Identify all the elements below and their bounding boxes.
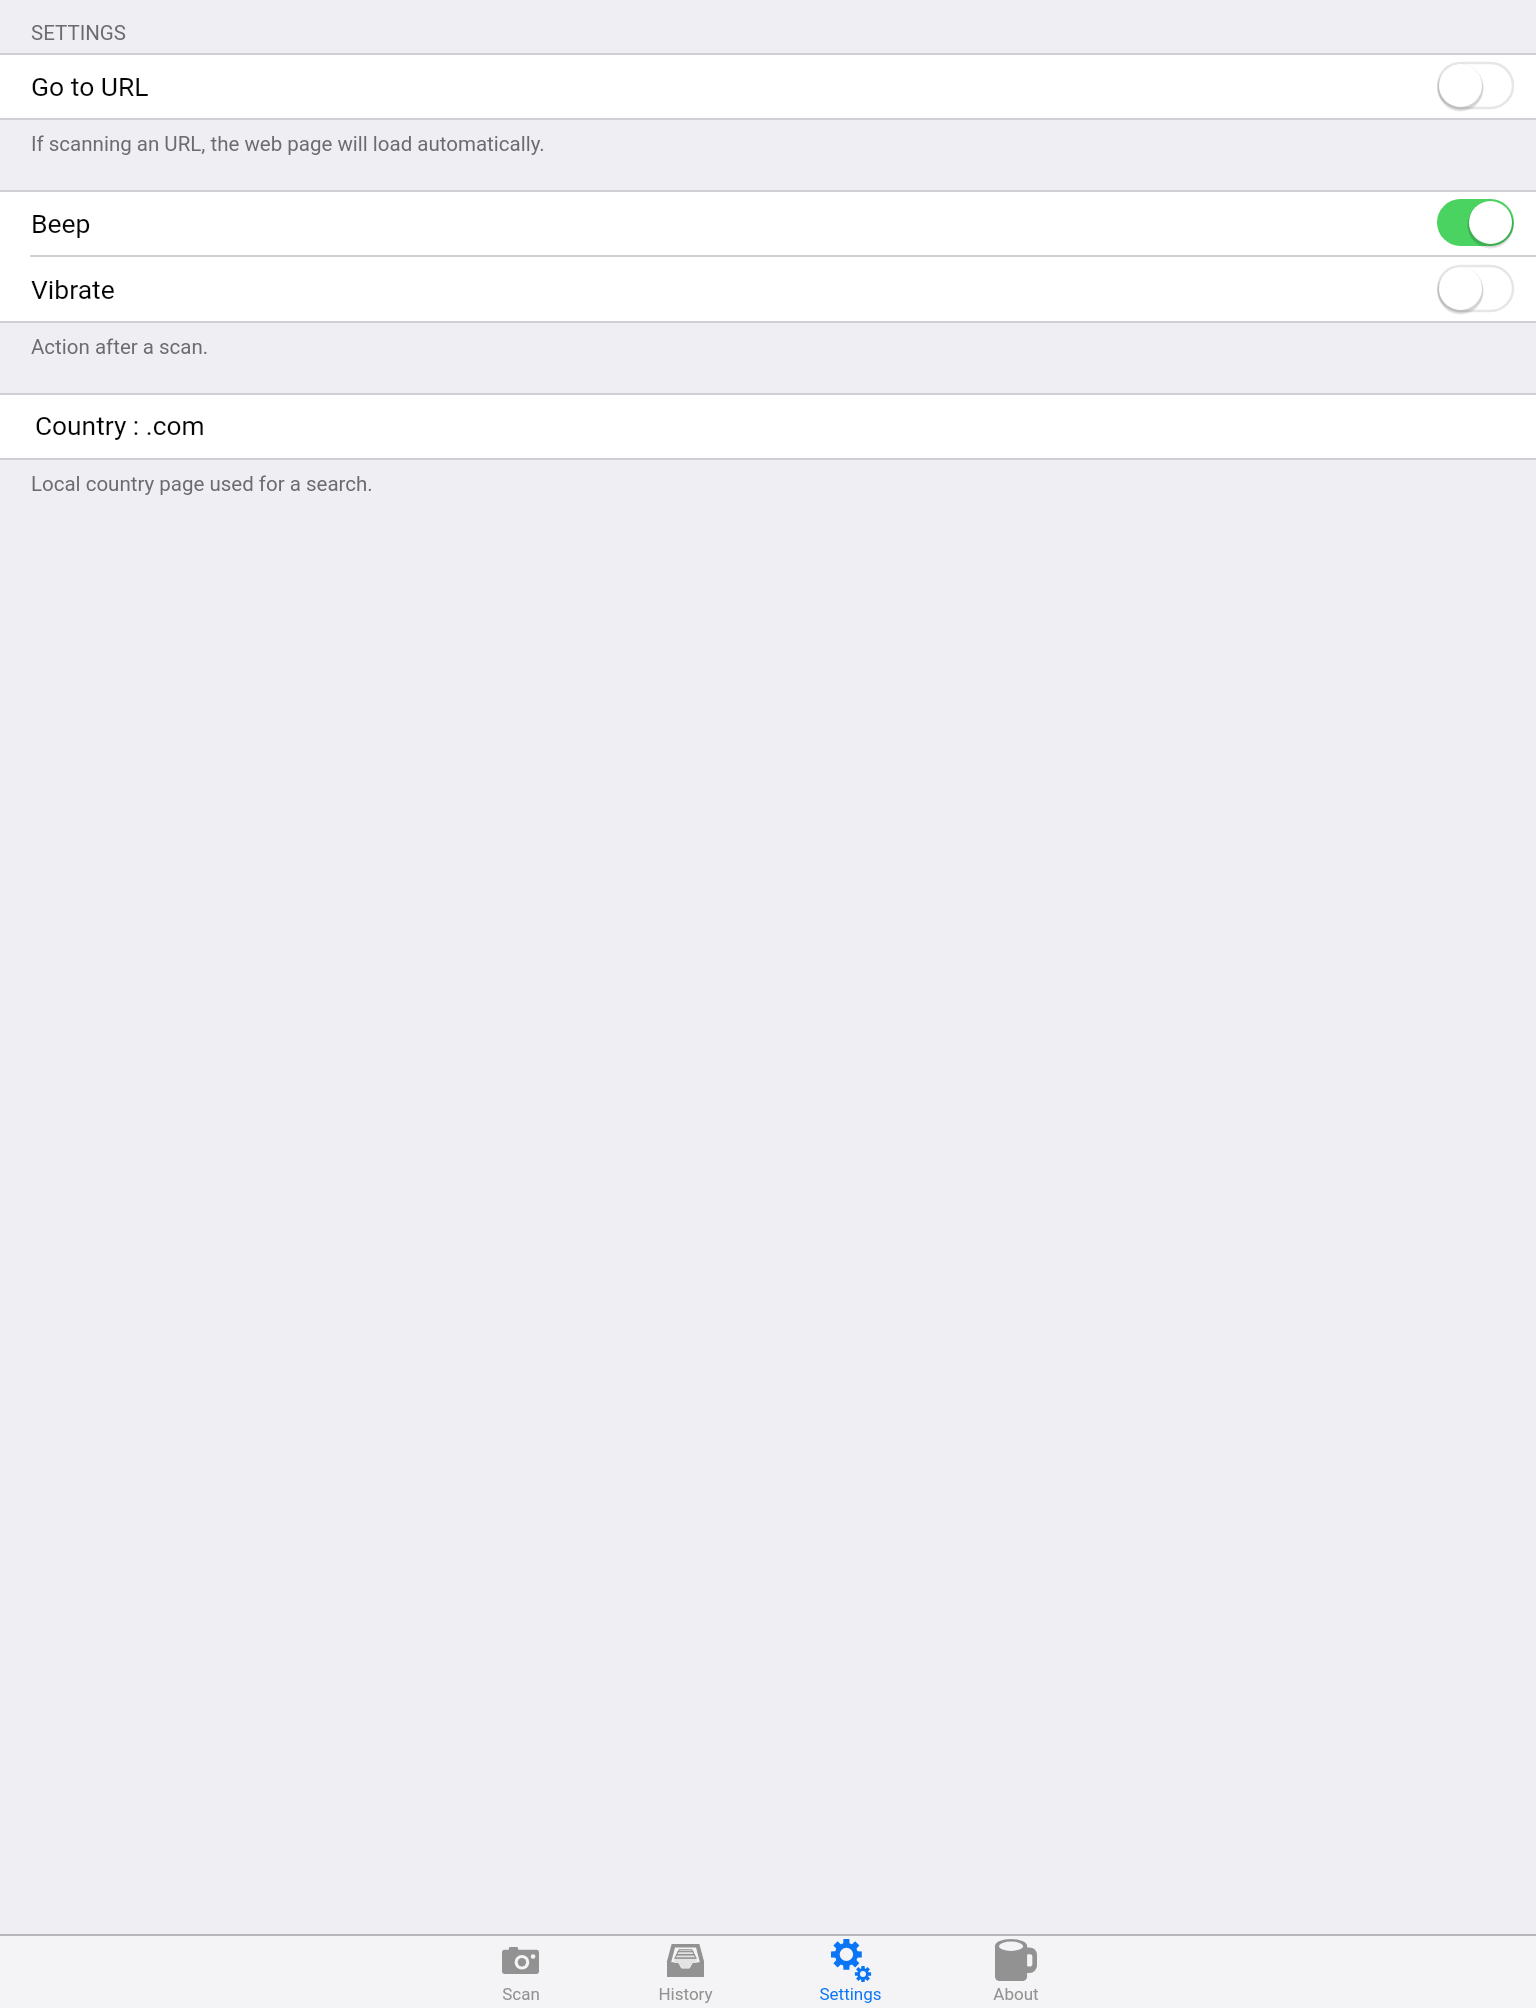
staticText: Local country page used for a search. [31, 472, 373, 496]
staticText: Settings [819, 1984, 882, 2004]
button[interactable]: Scan [438, 1936, 603, 2008]
staticText: Beep [31, 208, 91, 239]
button[interactable]: Vibrate [0, 257, 1536, 321]
button[interactable]: About [933, 1936, 1098, 2008]
staticText: Go to URL [31, 71, 149, 102]
staticText: Action after a scan. [31, 335, 209, 359]
staticText: Vibrate [31, 274, 115, 305]
staticText: If scanning an URL, the web page will lo… [31, 132, 545, 156]
button[interactable]: History [603, 1936, 768, 2008]
staticText: History [658, 1984, 713, 2004]
staticText: Scan [502, 1984, 540, 2004]
staticText: About [993, 1984, 1039, 2004]
button[interactable]: Country : .com [0, 395, 1536, 458]
staticText: Country : .com [35, 411, 205, 442]
button[interactable]: Settings [768, 1936, 933, 2008]
button[interactable]: Beep [0, 192, 1536, 255]
button[interactable]: Go to URL [0, 55, 1536, 118]
staticText: SETTINGS [31, 21, 126, 45]
